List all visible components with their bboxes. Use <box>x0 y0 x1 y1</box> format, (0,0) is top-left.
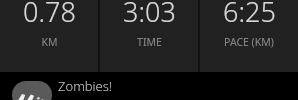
staticText: PACE (KM) <box>224 35 274 49</box>
staticText: KM <box>41 35 58 49</box>
staticText: Zombies! <box>58 77 113 95</box>
button[interactable]: Zombies Run avatar <box>0 72 298 100</box>
staticText: 3:03 <box>123 0 176 30</box>
staticText: 0.78 <box>23 0 76 30</box>
button[interactable]: 0.78 <box>0 0 98 72</box>
button[interactable]: 6:25 <box>200 0 298 72</box>
button[interactable]: 3:03 <box>100 0 198 72</box>
staticText: TIME <box>137 35 162 49</box>
other: Zombies Run avatar <box>12 81 52 100</box>
staticText: 6:25 <box>223 0 276 30</box>
